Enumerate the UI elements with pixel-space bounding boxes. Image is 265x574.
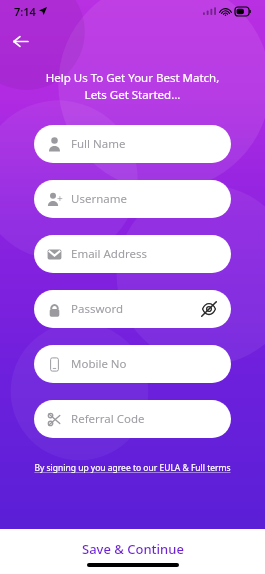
staticText: Email Address <box>71 246 148 262</box>
staticText: Full Name <box>71 136 126 152</box>
button[interactable]: Username <box>34 180 231 218</box>
staticText: Username <box>71 191 127 207</box>
button[interactable]: Mobile No <box>34 345 231 383</box>
staticText: 7:14 <box>14 4 36 19</box>
button[interactable]: Full Name <box>34 125 231 163</box>
button[interactable]: Referral Code <box>34 400 231 438</box>
staticText: By signing up you agree to our EULA & Fu… <box>34 462 231 474</box>
staticText: Mobile No <box>71 356 127 372</box>
button[interactable]: Save & Continue <box>0 529 265 574</box>
button[interactable]: Password <box>34 290 231 328</box>
staticText: Save & Continue <box>82 540 184 558</box>
staticText: Password <box>71 301 124 317</box>
button[interactable]: Email Address <box>34 235 231 273</box>
staticText: Referral Code <box>71 411 145 427</box>
button[interactable]: By signing up you agree to our EULA & Fu… <box>34 462 231 474</box>
button[interactable]: Show password <box>199 299 219 319</box>
button[interactable]: Back <box>7 28 34 55</box>
staticText: Help Us To Get Your Best Match, Lets Get… <box>34 70 231 103</box>
